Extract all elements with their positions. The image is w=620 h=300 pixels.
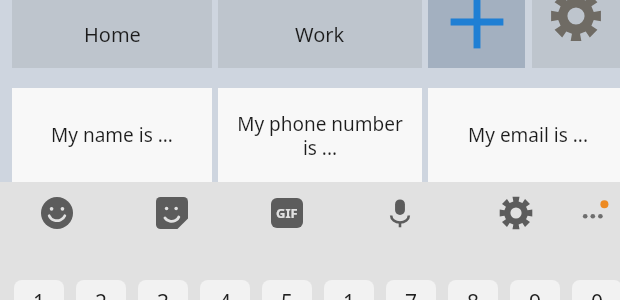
button[interactable]: 8 — [448, 280, 498, 300]
button[interactable]: 1 — [14, 280, 64, 300]
staticText: 3 — [157, 288, 170, 300]
other: Emoji — [41, 197, 73, 229]
button[interactable]: 9 — [510, 280, 560, 300]
button[interactable]: Emoji — [31, 187, 83, 239]
staticText: 9 — [529, 288, 542, 300]
staticText: 1 — [33, 288, 46, 300]
staticText: Home — [84, 21, 141, 48]
staticText: My email is ... — [468, 122, 588, 148]
button[interactable]: Voice input — [374, 187, 426, 239]
staticText: 8 — [467, 288, 480, 300]
button[interactable]: Work — [218, 0, 422, 68]
button[interactable]: 1 — [324, 280, 374, 300]
staticText: 2 — [95, 288, 108, 300]
staticText: 4 — [219, 288, 232, 300]
button[interactable]: Add shortcut — [428, 0, 525, 68]
button[interactable]: More options — [568, 187, 620, 239]
other: Voice input — [383, 196, 417, 230]
other: More options — [574, 193, 614, 233]
button[interactable]: My phone number is ... — [218, 88, 422, 182]
button[interactable]: 3 — [138, 280, 188, 300]
button[interactable]: 5 — [262, 280, 312, 300]
button[interactable]: Home — [12, 0, 212, 68]
staticText: My name is ... — [51, 122, 173, 148]
other: GIF — [271, 198, 303, 228]
staticText: Work — [295, 21, 345, 48]
other: Stickers — [156, 197, 188, 229]
button[interactable]: My name is ... — [12, 88, 212, 182]
button[interactable]: 7 — [386, 280, 436, 300]
button[interactable]: 0 — [572, 280, 620, 300]
staticText: 0 — [591, 288, 604, 300]
staticText: 1 — [343, 288, 356, 300]
other: Keyboard settings — [499, 196, 533, 230]
button[interactable]: 4 — [200, 280, 250, 300]
staticText: My phone number is ... — [237, 111, 403, 160]
button[interactable]: Keyboard settings — [490, 187, 542, 239]
button[interactable]: My email is ... — [428, 88, 620, 182]
button[interactable]: Stickers — [146, 187, 198, 239]
staticText: 5 — [281, 288, 294, 300]
staticText: GIF — [276, 204, 298, 222]
button[interactable]: Settings — [532, 0, 620, 68]
button[interactable]: GIF — [261, 187, 313, 239]
staticText: 7 — [405, 288, 418, 300]
button[interactable]: 2 — [76, 280, 126, 300]
